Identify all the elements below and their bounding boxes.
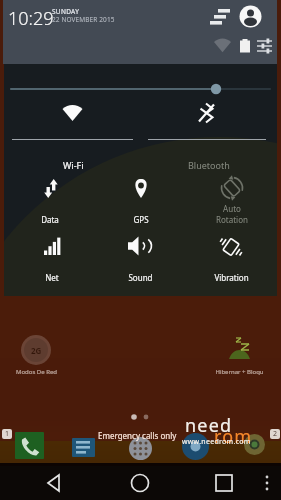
staticText: GPS: [133, 214, 149, 225]
staticText: 1: [5, 429, 10, 439]
button[interactable]: More options: [256, 466, 281, 500]
button[interactable]: GPS: [97, 167, 185, 213]
button[interactable]: Brightness: [11, 81, 270, 97]
button[interactable]: User profile: [239, 5, 262, 28]
button[interactable]: Home: [116, 466, 164, 500]
button[interactable]: Auto Rotation: [188, 166, 276, 212]
button[interactable]: Back: [32, 466, 80, 500]
staticText: www.needrom.com: [182, 437, 251, 447]
button[interactable]: Camera: [244, 434, 265, 455]
staticText: Data: [41, 214, 59, 225]
button[interactable]: All apps: [129, 437, 152, 460]
button[interactable]: Messaging: [72, 438, 95, 457]
staticText: Modos De Red: [16, 368, 57, 376]
button[interactable]: Hibernar + Bloqu: [206, 335, 272, 383]
button[interactable]: Vibration: [187, 225, 275, 271]
button[interactable]: Data usage: [209, 4, 233, 28]
staticText: Emergency calls only: [98, 430, 177, 441]
button[interactable]: Settings: [256, 37, 274, 55]
staticText: 2G: [31, 345, 42, 356]
button[interactable]: Net: [8, 225, 96, 271]
button[interactable]: Sound: [96, 224, 184, 270]
staticText: 2: [273, 429, 278, 439]
button[interactable]: Wi-Fi status: [213, 37, 232, 56]
staticText: 10:29: [8, 6, 54, 31]
button[interactable]: Battery: [236, 37, 254, 55]
button[interactable]: Data: [6, 167, 94, 213]
staticText: Hibernar + Bloqu: [215, 368, 264, 376]
staticText: Sound: [128, 272, 153, 283]
button[interactable]: Bluetooth: [148, 100, 270, 173]
staticText: Net: [45, 272, 59, 283]
staticText: need: [185, 413, 233, 438]
staticText: Wi-Fi: [63, 159, 84, 171]
button[interactable]: Wi-Fi: [12, 100, 134, 173]
button[interactable]: Phone: [15, 432, 44, 459]
staticText: rom: [214, 424, 253, 449]
staticText: Vibration: [214, 272, 249, 283]
staticText: 22 NOVEMBER 2015: [52, 15, 115, 24]
staticText: Bluetooth: [188, 159, 230, 171]
staticText: SUNDAY: [52, 7, 80, 16]
button[interactable]: 2G: [8, 335, 64, 383]
button[interactable]: Browser: [182, 433, 209, 460]
staticText: Auto Rotation: [216, 203, 248, 225]
button[interactable]: Recent apps: [200, 466, 248, 500]
